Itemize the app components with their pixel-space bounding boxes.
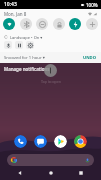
button[interactable]: Manage notifications [4,66,50,72]
staticText: 10:43 [4,1,17,8]
button[interactable]: Back [9,166,31,180]
button[interactable]: Play Store [54,135,67,148]
button[interactable]: Do not disturb [36,18,48,30]
button[interactable]: Snoozed for 1 hour ▾ [4,55,45,61]
button[interactable]: Phone [14,135,27,148]
button[interactable]: Flashlight [69,18,81,30]
button[interactable]: Wi-Fi [3,18,15,30]
button[interactable]: Home [40,166,62,180]
staticText: UNDO [83,55,96,61]
button[interactable]: Search [7,154,94,166]
button[interactable]: Pause [15,41,23,49]
button[interactable]: Auto-rotate [53,18,65,30]
button[interactable]: Bluetooth [20,18,32,30]
staticText: Tap to open [41,79,61,84]
button[interactable]: Expand [44,64,57,77]
button[interactable]: Messages [34,135,47,148]
button[interactable]: Mic [4,41,12,49]
button[interactable]: UNDO [82,54,97,62]
button[interactable]: Settings [26,41,34,49]
staticText: Landscape • On ▾ [10,35,43,40]
button[interactable]: Chrome [74,135,87,148]
staticText: Mon, Jan 8 [4,11,27,17]
staticText: 100% [86,2,98,8]
button[interactable]: Recents [70,166,92,180]
button[interactable]: Add tile [86,18,98,30]
